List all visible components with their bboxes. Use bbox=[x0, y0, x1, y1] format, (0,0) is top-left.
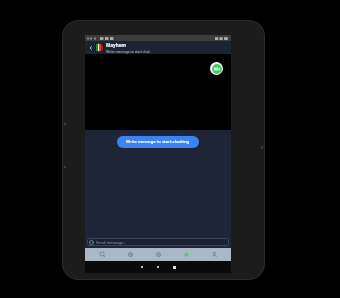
button[interactable]: Start video call bbox=[210, 62, 223, 75]
button[interactable]: Back bbox=[87, 44, 94, 51]
button[interactable]: Home bbox=[175, 248, 197, 261]
button[interactable]: Recent apps bbox=[166, 261, 182, 273]
staticText: Write message to start chat bbox=[106, 49, 150, 54]
button[interactable]: Explore bbox=[119, 248, 141, 261]
button[interactable]: Contact avatar bbox=[95, 43, 104, 52]
button[interactable]: Home bbox=[150, 261, 166, 273]
button[interactable]: Mayhem bbox=[106, 42, 228, 54]
staticText: Mayhem bbox=[106, 42, 126, 48]
button[interactable]: Profile bbox=[203, 248, 225, 261]
button[interactable]: Send message... bbox=[87, 238, 229, 246]
button[interactable]: Back bbox=[134, 261, 150, 273]
button[interactable]: Search bbox=[91, 248, 113, 261]
button[interactable]: Notifications bbox=[147, 248, 169, 261]
staticText: Write message to start chatting bbox=[126, 139, 190, 145]
staticText: Send message... bbox=[96, 240, 127, 245]
button[interactable]: Write message to start chatting bbox=[117, 136, 199, 148]
